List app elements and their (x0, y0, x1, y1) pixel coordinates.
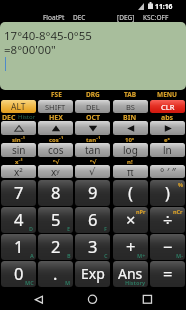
staticText: nPr (136, 208, 146, 215)
button[interactable]: sin (1, 143, 36, 157)
staticText: =8°00'00" (4, 42, 56, 58)
button[interactable]: Ans (113, 261, 148, 287)
staticText: log (123, 143, 138, 157)
button[interactable]: 3 (75, 234, 110, 260)
staticText: 17°40-8°45-0°55 (4, 28, 92, 44)
button[interactable]: ) (150, 180, 185, 206)
button[interactable]: + (113, 234, 148, 260)
staticText: BIN (123, 113, 137, 121)
button[interactable]: × (113, 207, 148, 233)
staticText: − (163, 235, 173, 257)
staticText: ( (128, 181, 133, 203)
button[interactable]: CLR (150, 100, 185, 113)
staticText: ° ′ ″ (160, 165, 176, 178)
staticText: DEC (73, 13, 86, 22)
button[interactable]: Home (73, 288, 113, 310)
staticText: 9 (88, 181, 98, 203)
button[interactable]: ln (150, 143, 185, 157)
button[interactable]: x² (1, 165, 36, 178)
button[interactable]: xʸ (38, 165, 73, 178)
button[interactable]: − (150, 234, 185, 260)
staticText: 1 (14, 235, 24, 257)
button[interactable]: . (38, 261, 73, 287)
staticText: ln (163, 143, 172, 157)
staticText: MC (25, 279, 34, 286)
staticText: DRG (86, 90, 100, 98)
staticText: MENU (157, 90, 177, 98)
button[interactable]: = (150, 261, 185, 287)
staticText: √ (89, 166, 96, 178)
staticText: B (67, 252, 71, 259)
staticText: F (104, 225, 108, 232)
button[interactable]: 1 (1, 234, 36, 260)
staticText: tan (85, 143, 101, 157)
staticText: CLR (161, 102, 175, 112)
staticText: sin⁻¹ (12, 136, 26, 144)
button[interactable]: Recents (127, 288, 167, 310)
staticText: 10ˣ (125, 136, 135, 144)
staticText: KSC:OFF (143, 13, 169, 22)
staticText: SHIFT (45, 102, 66, 112)
button[interactable]: log (113, 143, 148, 157)
staticText: HEX (49, 113, 63, 121)
staticText: eˣ (164, 136, 170, 144)
staticText: . (53, 262, 58, 284)
staticText: 8 (51, 181, 61, 203)
button[interactable]: ( (113, 180, 148, 206)
button[interactable]: ALT (1, 100, 36, 113)
button[interactable]: π (113, 165, 148, 178)
button[interactable]: DEL (75, 100, 110, 113)
button[interactable]: cos (38, 143, 73, 157)
button[interactable]: Exp (75, 261, 110, 287)
button[interactable]: SHIFT (38, 100, 73, 113)
staticText: % (178, 181, 183, 188)
staticText: A (30, 252, 34, 259)
button[interactable]: 6 (75, 207, 110, 233)
button[interactable]: 0 (1, 261, 36, 287)
button[interactable]: Cursor right (150, 121, 185, 135)
staticText: D (29, 225, 34, 232)
staticText: abs (161, 113, 174, 121)
staticText: [DEG] (117, 13, 135, 22)
button[interactable]: tan (75, 143, 110, 157)
staticText: DEL (86, 102, 100, 112)
staticText: + (126, 235, 136, 257)
staticText: 5 (51, 208, 61, 230)
button[interactable]: Back (20, 288, 60, 310)
staticText: 2 (51, 235, 61, 257)
button[interactable]: 8 (38, 180, 73, 206)
button[interactable]: 7 (1, 180, 36, 206)
staticText: nCr (173, 208, 183, 215)
staticText: x⁻¹ (15, 158, 23, 166)
button[interactable]: BS (113, 100, 148, 113)
staticText: ALT (11, 101, 26, 113)
staticText: ÷ (163, 208, 173, 230)
button[interactable]: ° ′ ″ (150, 165, 185, 178)
button[interactable]: √ (75, 165, 110, 178)
staticText: 3 (88, 235, 98, 257)
button[interactable]: 9 (75, 180, 110, 206)
button[interactable]: ÷ (150, 207, 185, 233)
button[interactable]: 4 (1, 207, 36, 233)
button[interactable]: Cursor left (113, 121, 148, 135)
staticText: 4 (14, 208, 24, 230)
button[interactable]: Scroll down (75, 121, 110, 135)
button[interactable]: 5 (38, 207, 73, 233)
staticText: xʸ (51, 165, 60, 178)
staticText: tan⁻¹ (86, 136, 101, 144)
staticText: cos (48, 143, 64, 157)
staticText: FloatPt (43, 13, 65, 22)
button[interactable]: Cursor up (1, 121, 36, 135)
staticText: 0 (14, 262, 24, 284)
staticText: Exp (81, 264, 105, 283)
button[interactable]: 2 (38, 234, 73, 260)
staticText: FSE (51, 90, 62, 98)
button[interactable]: 17°40-8°45-0°55 (0, 22, 186, 90)
staticText: ⁿ√ (90, 158, 97, 166)
staticText: DEC (2, 113, 16, 121)
staticText: TAB (124, 90, 137, 98)
staticText: 7 (14, 181, 24, 203)
staticText: ) (165, 181, 170, 203)
staticText: M- (176, 252, 183, 259)
button[interactable]: Scroll up (38, 121, 73, 135)
